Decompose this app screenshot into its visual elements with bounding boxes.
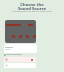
staticText: Recommended [7, 53, 22, 56]
button[interactable] [4, 57, 36, 62]
button[interactable] [4, 44, 37, 53]
staticText: Choose where you want to listen today [0, 10, 64, 13]
button[interactable] [5, 20, 36, 43]
staticText: Choose the Sound Source [0, 2, 64, 12]
button[interactable] [4, 63, 36, 68]
